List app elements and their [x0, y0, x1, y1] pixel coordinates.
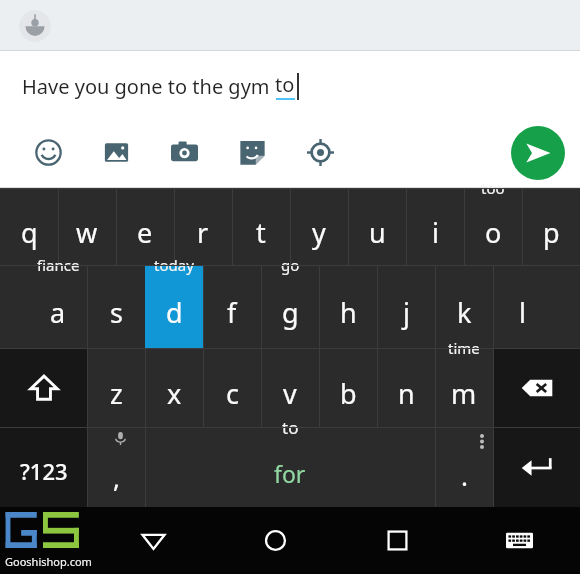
button[interactable]: q: [0, 188, 58, 265]
staticText: w: [76, 214, 98, 251]
button[interactable]: i: [406, 188, 464, 265]
button[interactable]: Back: [92, 507, 214, 574]
button[interactable]: p: [522, 188, 580, 265]
staticText: Have you gone to the gym: [22, 73, 275, 100]
button[interactable]: Space: [145, 427, 435, 507]
button[interactable]: d: [145, 265, 203, 348]
staticText: o: [485, 214, 502, 251]
staticText: r: [197, 214, 209, 251]
staticText: f: [227, 294, 237, 331]
button[interactable]: z: [87, 348, 145, 427]
button[interactable]: Period, more symbols: [435, 427, 493, 507]
button[interactable]: h: [319, 265, 377, 348]
button[interactable]: l: [493, 265, 551, 348]
button[interactable]: Enter: [493, 427, 580, 507]
button[interactable]: c: [203, 348, 261, 427]
staticText: j: [403, 294, 410, 331]
staticText: for: [274, 458, 306, 489]
button[interactable]: Backspace: [493, 348, 580, 427]
staticText: go: [281, 255, 300, 275]
staticText: q: [21, 214, 38, 251]
button[interactable]: Share location: [286, 130, 354, 174]
button[interactable]: b: [319, 348, 377, 427]
button[interactable]: n: [377, 348, 435, 427]
button[interactable]: Send: [511, 126, 565, 180]
staticText: ,: [113, 460, 120, 495]
staticText: ?123: [20, 456, 68, 486]
button[interactable]: a: [29, 265, 87, 348]
button[interactable]: o: [464, 188, 522, 265]
button[interactable]: k: [435, 265, 493, 348]
staticText: i: [432, 214, 439, 251]
staticText: g: [282, 294, 299, 331]
button[interactable]: u: [348, 188, 406, 265]
staticText: s: [110, 294, 123, 331]
staticText: fiance: [37, 255, 80, 275]
button[interactable]: s: [87, 265, 145, 348]
staticText: t: [256, 214, 266, 251]
button[interactable]: Insert sticker: [218, 130, 286, 174]
button[interactable]: Contact avatar: [19, 10, 51, 42]
button[interactable]: Insert image: [82, 130, 150, 174]
button[interactable]: r: [174, 188, 232, 265]
staticText: a: [50, 294, 66, 331]
button[interactable]: y: [290, 188, 348, 265]
button[interactable]: f: [203, 265, 261, 348]
button[interactable]: Switch keyboard: [458, 507, 580, 574]
button[interactable]: v: [261, 348, 319, 427]
button[interactable]: ?123: [0, 427, 87, 507]
staticText: v: [283, 375, 297, 412]
staticText: too: [481, 178, 505, 198]
button[interactable]: t: [232, 188, 290, 265]
button[interactable]: m: [435, 348, 493, 427]
staticText: m: [451, 375, 477, 412]
staticText: u: [369, 214, 386, 251]
staticText: d: [166, 294, 183, 331]
staticText: l: [519, 294, 526, 331]
staticText: y: [312, 214, 326, 251]
staticText: today: [154, 255, 194, 275]
staticText: x: [167, 375, 182, 412]
staticText: c: [226, 375, 239, 412]
button[interactable]: j: [377, 265, 435, 348]
staticText: to: [275, 71, 295, 98]
staticText: b: [340, 375, 357, 412]
button[interactable]: Shift: [0, 348, 87, 427]
staticText: p: [543, 214, 560, 251]
staticText: time: [448, 338, 480, 358]
staticText: Gooshishop.com: [5, 554, 92, 569]
staticText: h: [340, 294, 357, 331]
button[interactable]: x: [145, 348, 203, 427]
button[interactable]: e: [116, 188, 174, 265]
button[interactable]: g: [261, 265, 319, 348]
staticText: e: [137, 214, 153, 251]
button[interactable]: Recent apps: [336, 507, 458, 574]
button[interactable]: Insert emoji: [14, 130, 82, 174]
button[interactable]: Comma, voice input: [87, 427, 145, 507]
button[interactable]: w: [58, 188, 116, 265]
staticText: n: [398, 375, 415, 412]
button[interactable]: Take photo: [150, 130, 218, 174]
button[interactable]: Home: [214, 507, 336, 574]
staticText: .: [461, 458, 468, 493]
staticText: z: [110, 375, 123, 412]
staticText: to: [282, 416, 299, 439]
staticText: k: [457, 294, 472, 331]
